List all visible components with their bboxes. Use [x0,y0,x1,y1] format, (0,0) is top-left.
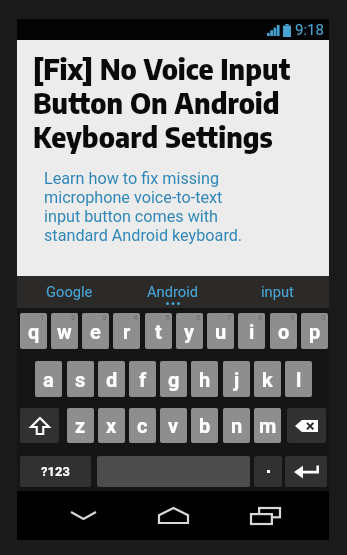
button[interactable]: y [176,313,203,349]
staticText: 1 [40,313,45,322]
staticText: s [75,368,86,391]
button[interactable]: h [191,361,218,397]
staticText: n [231,414,243,437]
staticText: [Fix] No Voice Input Button On Android K… [33,51,321,154]
staticText: w [57,320,72,343]
staticText: e [90,320,101,343]
button[interactable]: Backspace [287,408,326,443]
staticText: v [168,414,179,437]
button[interactable]: c [129,408,156,443]
staticText: h [199,368,211,391]
button[interactable]: a [35,361,62,397]
button[interactable]: r [113,313,140,349]
staticText: t [155,320,162,343]
staticText: Learn how to fix missing microphone voic… [44,169,251,245]
button[interactable]: e [82,313,109,349]
staticText: f [139,368,147,391]
staticText: d [106,368,118,391]
staticText: 3 [102,313,107,322]
button[interactable]: Android [121,276,225,308]
button[interactable]: p [301,313,328,349]
button[interactable]: Enter [285,456,327,487]
staticText: 5 [165,313,170,322]
staticText: x [106,414,117,437]
button[interactable]: t [145,313,172,349]
staticText: a [43,368,54,391]
staticText: 7 [227,313,232,322]
staticText: 6 [196,313,201,322]
staticText: o [278,320,290,343]
button[interactable]: f [129,361,156,397]
button[interactable]: w [51,313,78,349]
button[interactable]: Recents [251,491,280,540]
staticText: c [137,414,148,437]
button[interactable]: m [254,408,281,443]
staticText: m [259,414,277,437]
staticText: 2 [71,313,76,322]
button[interactable]: o [270,313,297,349]
staticText: r [123,320,131,343]
button[interactable]: b [191,408,218,443]
button[interactable]: i [238,313,265,349]
staticText: ?123 [41,464,70,479]
staticText: 0 [321,313,326,322]
button[interactable]: q [20,313,47,349]
button[interactable]: x [98,408,125,443]
staticText: y [184,320,195,343]
staticText: g [168,368,180,391]
staticText: p [309,320,321,343]
button[interactable]: Shift [20,408,59,443]
button[interactable]: g [160,361,187,397]
button[interactable]: k [254,361,281,397]
button[interactable]: s [67,361,94,397]
button[interactable]: z [67,408,94,443]
staticText: q [28,320,40,343]
staticText: k [262,368,273,391]
staticText: 9 [290,313,295,322]
button[interactable]: Back [69,491,98,540]
staticText: 8 [258,313,263,322]
staticText: l [296,368,302,391]
button[interactable]: v [160,408,187,443]
button[interactable]: l [285,361,312,397]
staticText: u [215,320,227,343]
staticText: b [199,414,211,437]
staticText: 9:18 [295,21,324,39]
button[interactable]: j [223,361,250,397]
staticText: 4 [133,313,138,322]
button[interactable]: u [207,313,234,349]
staticText: i [249,320,255,343]
button[interactable]: ?123 [20,456,91,487]
button[interactable]: Google [17,276,121,308]
button[interactable]: input [225,276,329,308]
button[interactable]: n [223,408,250,443]
staticText: j [234,368,240,391]
button[interactable]: Period [254,456,282,487]
staticText: input [261,283,294,300]
button[interactable]: Home [159,491,188,540]
staticText: Android [147,283,199,300]
staticText: z [75,414,86,437]
staticText: Google [46,283,93,300]
button[interactable]: d [98,361,125,397]
